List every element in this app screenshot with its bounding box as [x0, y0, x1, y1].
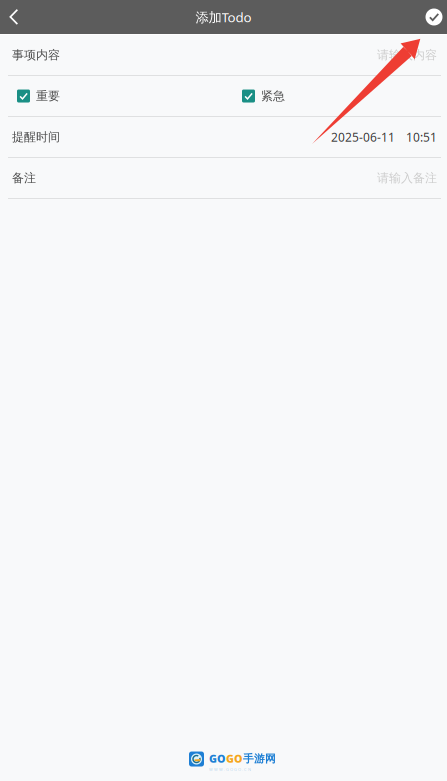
- staticText: 请输入内容: [377, 48, 437, 62]
- staticText: W W W . G O G O . C N: [209, 767, 251, 772]
- staticText: 手游网: [243, 752, 276, 765]
- staticText: 请输入备注: [377, 171, 437, 185]
- staticText: 10:51: [406, 129, 437, 145]
- staticText: GO: [209, 751, 226, 766]
- staticText: 重要: [36, 89, 60, 103]
- staticText: GO: [226, 751, 243, 766]
- staticText: 提醒时间: [12, 130, 60, 144]
- staticText: 紧急: [261, 89, 285, 103]
- button[interactable]: 事项内容: [0, 35, 447, 75]
- button[interactable]: 备注: [0, 158, 447, 198]
- button[interactable]: 保存: [419, 0, 447, 34]
- button[interactable]: 返回: [1, 0, 27, 34]
- staticText: 添加Todo: [195, 8, 251, 26]
- button[interactable]: 重要: [17, 89, 60, 103]
- staticText: 2025-06-11: [331, 129, 395, 145]
- staticText: 备注: [12, 171, 36, 185]
- button[interactable]: 紧急: [242, 89, 285, 103]
- staticText: 事项内容: [12, 48, 60, 62]
- button[interactable]: 提醒时间: [0, 117, 447, 157]
